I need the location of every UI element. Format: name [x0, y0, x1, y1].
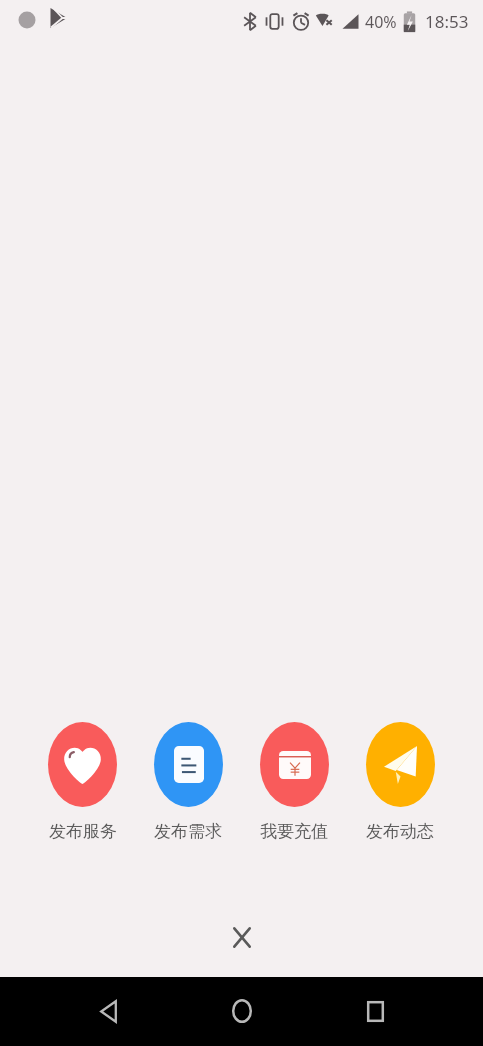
button[interactable]: 我要充值 [241, 722, 347, 842]
button[interactable]: 发布动态 [347, 722, 453, 842]
staticText: 40% [365, 11, 397, 33]
button[interactable]: Home [210, 979, 274, 1043]
button[interactable]: Back [76, 979, 140, 1043]
staticText: 我要充值 [260, 821, 328, 842]
button[interactable]: 发布需求 [135, 722, 241, 842]
button[interactable]: Close [219, 915, 265, 959]
staticText: 发布动态 [366, 821, 434, 842]
button[interactable]: 发布服务 [30, 722, 135, 842]
staticText: 18:53 [425, 10, 469, 33]
button[interactable]: Recents [343, 979, 407, 1043]
staticText: 发布服务 [49, 821, 117, 842]
staticText: 发布需求 [154, 821, 222, 842]
